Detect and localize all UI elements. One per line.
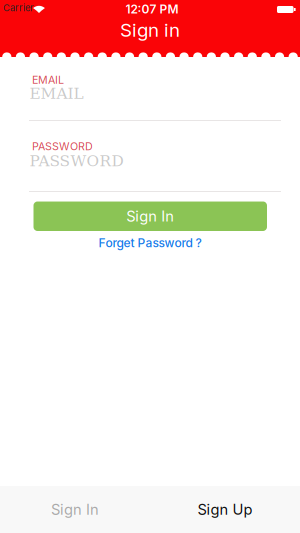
- button[interactable]: PASSWORD: [29, 138, 281, 193]
- button[interactable]: Sign In: [33, 201, 267, 231]
- button[interactable]: EMAIL: [29, 69, 281, 122]
- button[interactable]: Sign In: [0, 486, 150, 533]
- staticText: 12:07 PM: [125, 2, 178, 16]
- staticText: Sign In: [126, 208, 174, 225]
- staticText: Sign Up: [197, 501, 252, 518]
- staticText: Sign In: [51, 501, 99, 518]
- staticText: Forget Password ?: [98, 236, 201, 250]
- staticText: Carrier: [3, 2, 34, 13]
- button[interactable]: Sign Up: [150, 486, 300, 533]
- staticText: PASSWORD: [29, 152, 123, 170]
- staticText: EMAIL: [29, 84, 83, 102]
- staticText: Sign in: [120, 19, 180, 41]
- staticText: EMAIL: [32, 73, 64, 86]
- staticText: PASSWORD: [32, 140, 93, 153]
- button[interactable]: Forget Password ?: [98, 236, 201, 250]
